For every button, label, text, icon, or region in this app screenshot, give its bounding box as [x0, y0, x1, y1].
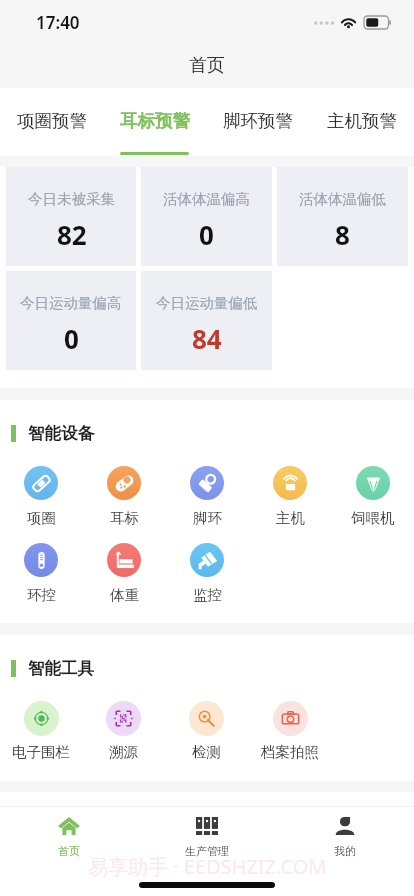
button[interactable]: 今日未被采集	[6, 167, 136, 266]
button[interactable]: 监控	[190, 543, 224, 604]
staticText: 智能设备	[28, 423, 94, 444]
staticText: 今日运动量偏低	[156, 294, 258, 312]
staticText: 活体体温偏低	[299, 190, 386, 208]
staticText: 脚环	[193, 509, 222, 527]
button[interactable]: 体重	[107, 543, 141, 604]
staticText: 易享助手 · EEDSHZIZ.COM	[88, 853, 327, 880]
staticText: 0	[64, 321, 79, 356]
staticText: 体重	[110, 586, 139, 604]
button[interactable]: 耳标	[107, 466, 141, 527]
button[interactable]: 今日运动量偏低	[141, 271, 272, 370]
staticText: 0	[199, 217, 214, 252]
button[interactable]: 活体体温偏高	[141, 167, 272, 266]
staticText: 脚环预警	[223, 110, 293, 132]
button[interactable]: 电子围栏	[12, 701, 70, 761]
staticText: 今日未被采集	[28, 190, 115, 208]
staticText: 首页	[58, 844, 80, 858]
staticText: 检测	[192, 743, 221, 761]
button[interactable]: 脚环预警	[206, 88, 310, 156]
staticText: 主机预警	[327, 110, 397, 132]
button[interactable]: 脚环	[190, 466, 224, 527]
staticText: 监控	[193, 586, 222, 604]
button[interactable]: 饲喂机	[351, 466, 395, 527]
button[interactable]: 我的	[276, 807, 414, 865]
button[interactable]: 环控	[24, 543, 58, 604]
staticText: 项圈预警	[17, 110, 87, 132]
button[interactable]: 活体体温偏低	[277, 167, 408, 266]
button[interactable]: 生产管理	[138, 807, 276, 865]
staticText: 智能工具	[28, 658, 94, 679]
button[interactable]: 项圈	[24, 466, 58, 527]
staticText: 首页	[189, 54, 225, 77]
staticText: 8	[335, 217, 350, 252]
staticText: 环控	[27, 586, 56, 604]
staticText: 档案拍照	[261, 743, 319, 761]
staticText: 项圈	[27, 509, 56, 527]
button[interactable]: 检测	[189, 701, 224, 761]
staticText: 耳标	[110, 509, 139, 527]
staticText: 生产管理	[185, 844, 229, 858]
staticText: 电子围栏	[12, 743, 70, 761]
staticText: 活体体温偏高	[163, 190, 250, 208]
staticText: 17:40	[36, 11, 80, 34]
button[interactable]: 主机	[273, 466, 307, 527]
staticText: 主机	[276, 509, 305, 527]
button[interactable]: 耳标预警	[103, 88, 206, 156]
staticText: 84	[192, 321, 222, 356]
staticText: 我的	[334, 844, 356, 858]
button[interactable]: 溯源	[106, 701, 141, 761]
staticText: 耳标预警	[120, 110, 190, 132]
staticText: 饲喂机	[351, 509, 395, 527]
button[interactable]: 项圈预警	[0, 88, 103, 156]
button[interactable]: 主机预警	[310, 88, 414, 156]
button[interactable]: 今日运动量偏高	[6, 271, 136, 370]
staticText: 溯源	[109, 743, 138, 761]
staticText: 今日运动量偏高	[20, 294, 122, 312]
button[interactable]: 档案拍照	[261, 701, 319, 761]
staticText: 82	[57, 217, 87, 252]
button[interactable]: 首页	[0, 807, 138, 865]
